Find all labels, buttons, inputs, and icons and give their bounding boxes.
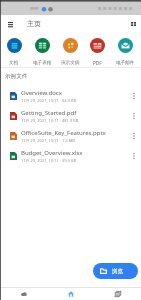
staticText: 演示文稿 [61,60,80,66]
button[interactable]: Cloud storage [0,287,47,300]
staticText: OfficeSuite_Key_Features.pptx [21,129,106,137]
staticText: Budget_Overview.xlsx [21,149,83,157]
staticText: 浏览 [112,268,123,275]
button[interactable]: OfficeSuite_Key_Features.pptx [0,126,141,146]
staticText: 电子邮件 [116,60,135,66]
button[interactable]: More options [127,109,141,123]
button[interactable]: 电子邮件 [111,34,139,66]
button[interactable]: My files [94,287,141,300]
button[interactable]: 浏览 [93,263,138,279]
button[interactable]: 电子表格 [28,34,56,66]
staticText: 11月 29, 2021, 13:11 · 39.9 KB [21,158,76,163]
staticText: 文档 [9,60,19,66]
staticText: 11月 29, 2021, 13:11 · 64.3 KB [21,98,76,103]
button[interactable]: Budget_Overview.xlsx [0,146,141,166]
staticText: Overview.docx [21,89,62,97]
staticText: 11月 29, 2021, 13:11 · 481.9 KB [21,118,79,123]
button[interactable]: More options [127,129,141,143]
button[interactable]: More options [127,89,141,103]
button[interactable]: More options [127,149,141,163]
staticText: 示例文件 [5,73,28,80]
button[interactable]: Open navigation menu [2,16,18,32]
button[interactable]: PDF [83,34,111,66]
staticText: 电子表格 [33,60,52,66]
staticText: 主页 [27,19,41,28]
button[interactable]: 文档 [0,34,28,66]
button[interactable]: Switch to grid view [125,16,141,32]
staticText: 11月 29, 2021, 13:11 · 1.2 MB [21,138,75,143]
button[interactable]: Home [47,287,94,300]
staticText: PDF [93,60,102,66]
button[interactable]: Overview.docx [0,86,141,106]
button[interactable]: 演示文稿 [56,34,84,66]
staticText: Getting_Started.pdf [21,109,77,117]
button[interactable]: Getting_Started.pdf [0,106,141,126]
